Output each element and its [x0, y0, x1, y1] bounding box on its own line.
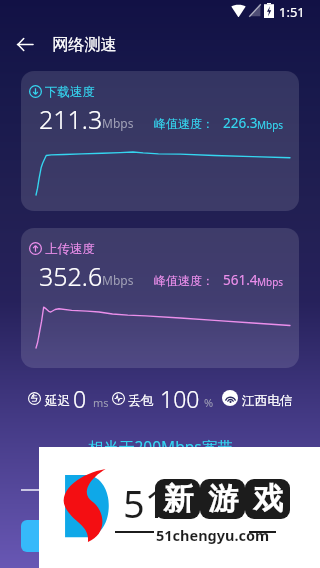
staticText: 丢包 — [128, 393, 154, 409]
staticText: 相当于200Mbps宽带 — [88, 436, 233, 457]
button[interactable]: 上传速度 — [21, 228, 299, 368]
staticText: 1:51 — [279, 3, 305, 21]
staticText: 51 — [123, 477, 167, 529]
staticText: 51chengyu.com — [156, 525, 270, 545]
staticText: 戏 — [253, 480, 283, 518]
staticText: 561.4 — [223, 271, 258, 289]
staticText: Mbps — [257, 118, 284, 132]
staticText: % — [204, 395, 214, 410]
staticText: Mbps — [102, 115, 134, 131]
staticText: Mbps — [102, 272, 134, 288]
staticText: 下载速度 — [45, 84, 95, 100]
button[interactable]: Back — [9, 29, 40, 60]
staticText: 226.3 — [223, 114, 258, 132]
button[interactable]: 下载速度 — [21, 71, 299, 211]
staticText: ms — [93, 395, 109, 410]
staticText: Mbps — [257, 275, 284, 289]
staticText: 峰值速度： — [154, 116, 214, 131]
staticText: 江西电信 — [242, 393, 293, 409]
staticText: 100 — [160, 383, 200, 409]
staticText: 211.3 — [39, 102, 103, 136]
staticText: 延迟 — [45, 393, 71, 409]
staticText: 新 — [163, 480, 193, 518]
staticText: 0 — [73, 383, 87, 409]
staticText: 峰值速度： — [154, 273, 214, 288]
button[interactable] — [21, 520, 299, 552]
staticText: 网络测速 — [52, 34, 117, 54]
staticText: 游 — [208, 480, 238, 518]
staticText: 上传速度 — [45, 241, 95, 257]
staticText: 352.6 — [39, 259, 103, 293]
